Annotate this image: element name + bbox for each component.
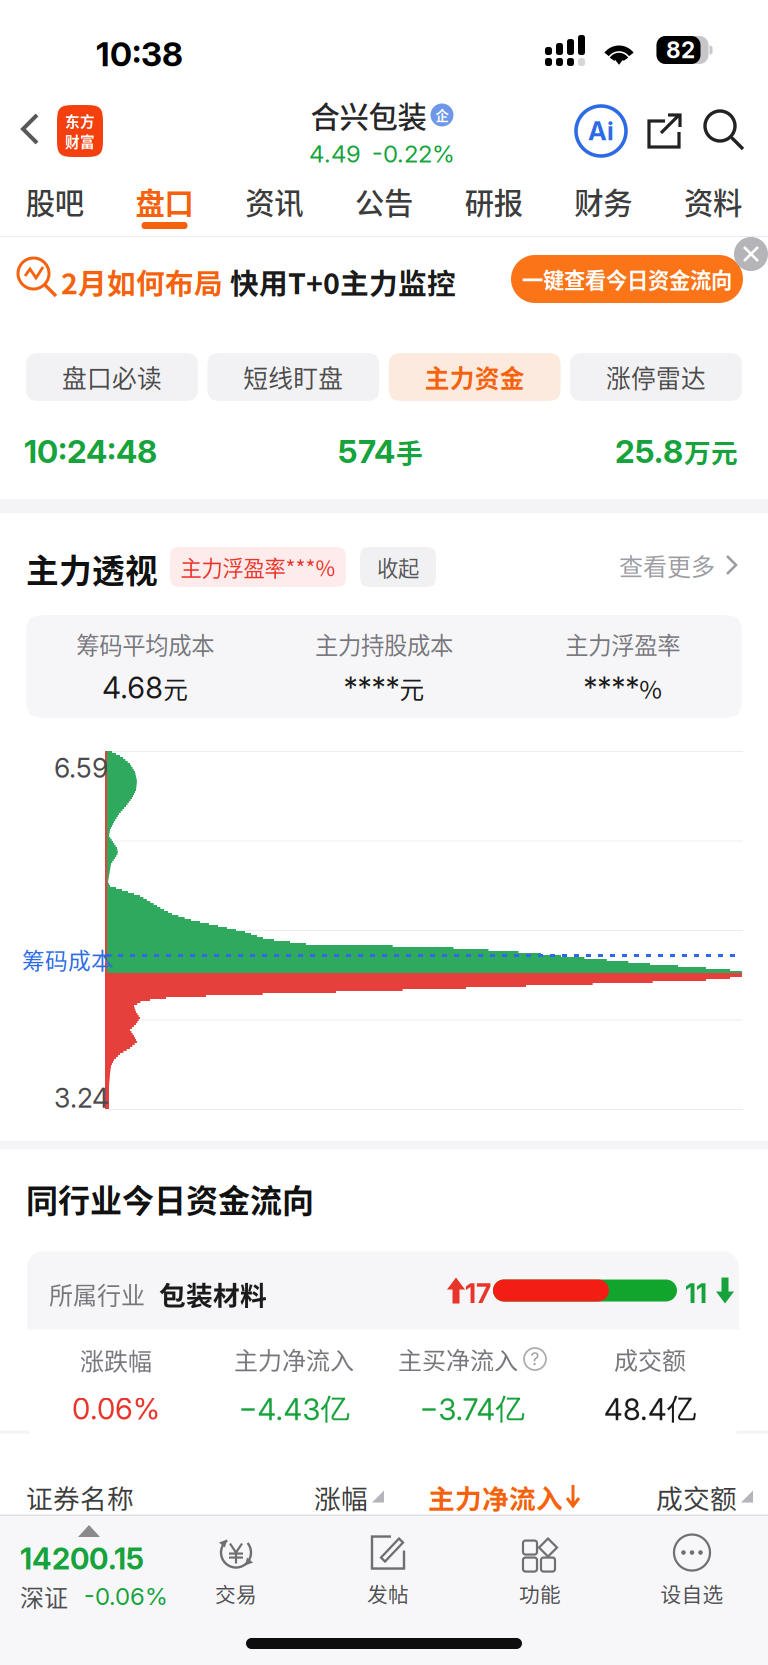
- staticText: 主力透视: [26, 545, 158, 592]
- staticText: 筹码平均成本: [76, 627, 214, 661]
- staticText: 股吧: [26, 180, 84, 222]
- button[interactable]: 股吧: [0, 176, 110, 236]
- staticText: 0.06%: [72, 1391, 160, 1427]
- staticText: 3.24: [54, 1082, 109, 1114]
- staticText: 设自选: [660, 1578, 723, 1608]
- staticText: 涨停雷达: [606, 359, 706, 395]
- staticText: 10:24:48: [24, 432, 157, 471]
- button[interactable]: 一键查看今日资金流向: [511, 255, 743, 303]
- staticText: 主买净流入: [398, 1342, 518, 1376]
- staticText: %: [639, 670, 662, 706]
- button[interactable]: 主力资金: [389, 353, 561, 401]
- button[interactable]: 交易: [160, 1523, 312, 1619]
- button[interactable]: 搜索: [694, 86, 756, 176]
- staticText: 盘口必读: [62, 359, 162, 395]
- staticText: 查看更多: [619, 548, 715, 582]
- staticText: 合兴包装: [310, 94, 426, 136]
- staticText: 功能: [519, 1578, 561, 1608]
- staticText: 主力资金: [425, 359, 525, 395]
- staticText: -0.22%: [372, 139, 455, 168]
- button[interactable]: 东方财富: [57, 86, 103, 176]
- staticText: 财务: [574, 180, 632, 222]
- staticText: 82: [666, 36, 695, 64]
- staticText: 主力浮盈率: [565, 627, 680, 661]
- button[interactable]: 发帖: [312, 1523, 464, 1619]
- staticText: 快用T+0主力监控: [230, 261, 456, 302]
- button[interactable]: 盘口必读: [26, 353, 198, 401]
- staticText: 25.8: [615, 432, 683, 471]
- staticText: 主力净流入: [234, 1342, 354, 1376]
- staticText: 主力浮盈率***%: [180, 552, 335, 582]
- staticText: 同行业今日资金流向: [26, 1175, 314, 1222]
- staticText: −3.74亿: [419, 1390, 524, 1427]
- staticText: -0.06%: [84, 1582, 168, 1611]
- button[interactable]: 收起: [360, 547, 436, 587]
- staticText: 元: [399, 670, 424, 706]
- staticText: 574: [338, 432, 395, 471]
- button[interactable]: 关闭: [734, 237, 768, 271]
- staticText: 深证: [20, 1579, 68, 1614]
- staticText: ****: [343, 670, 399, 706]
- staticText: 48.4亿: [604, 1390, 696, 1427]
- staticText: 东方: [65, 110, 95, 131]
- staticText: 涨跌幅: [80, 1342, 152, 1377]
- staticText: 所属行业: [49, 1276, 145, 1311]
- staticText: 交易: [215, 1578, 257, 1608]
- staticText: 收起: [377, 552, 419, 582]
- staticText: 主力净流入: [428, 1478, 563, 1516]
- staticText: 资料: [684, 180, 742, 222]
- staticText: 主力持股成本: [315, 627, 453, 661]
- button[interactable]: 功能: [464, 1523, 616, 1619]
- button[interactable]: 资料: [658, 176, 768, 236]
- button[interactable]: 涨停雷达: [570, 353, 742, 401]
- staticText: 万元: [684, 432, 738, 471]
- button[interactable]: 分享: [634, 86, 694, 176]
- staticText: 元: [163, 670, 188, 706]
- button[interactable]: 深证指数: [4, 1523, 180, 1619]
- staticText: 一键查看今日资金流向: [522, 264, 732, 294]
- staticText: 筹码成本: [22, 943, 114, 976]
- staticText: 17: [465, 1277, 491, 1310]
- button[interactable]: 研报: [439, 176, 548, 236]
- staticText: ****: [583, 670, 639, 706]
- staticText: 发帖: [367, 1578, 409, 1608]
- staticText: 研报: [465, 180, 523, 222]
- staticText: 14200.15: [20, 1541, 144, 1576]
- staticText: −4.43亿: [238, 1390, 349, 1427]
- staticText: 证券名称: [26, 1478, 134, 1516]
- button[interactable]: 设自选: [616, 1523, 768, 1619]
- button[interactable]: AI 助手: [570, 86, 632, 176]
- staticText: 涨幅: [314, 1478, 368, 1516]
- button[interactable]: 资讯: [219, 176, 329, 236]
- button[interactable]: 查看更多: [552, 537, 738, 593]
- staticText: 盘口: [136, 180, 194, 222]
- staticText: 手: [396, 432, 423, 471]
- button[interactable]: 返回: [0, 86, 62, 176]
- staticText: 财富: [65, 130, 95, 152]
- staticText: 成交额: [656, 1478, 737, 1516]
- staticText: 6.59: [54, 752, 108, 784]
- staticText: 4.68: [102, 670, 163, 706]
- button[interactable]: 财务: [548, 176, 658, 236]
- staticText: 企: [435, 105, 448, 125]
- staticText: 10:38: [96, 34, 183, 74]
- button[interactable]: 公告: [329, 176, 439, 236]
- button[interactable]: 盘口: [110, 176, 219, 236]
- staticText: 11: [685, 1277, 707, 1310]
- staticText: ?: [530, 1348, 539, 1369]
- staticText: 公告: [355, 180, 413, 222]
- staticText: 资讯: [245, 180, 303, 222]
- staticText: 4.49: [309, 139, 361, 168]
- staticText: 短线盯盘: [243, 359, 343, 395]
- staticText: 包装材料: [159, 1274, 267, 1313]
- staticText: Ai: [588, 116, 614, 146]
- staticText: 成交额: [614, 1342, 686, 1376]
- button[interactable]: 短线盯盘: [207, 353, 379, 401]
- staticText: 2月如何布局: [61, 261, 223, 302]
